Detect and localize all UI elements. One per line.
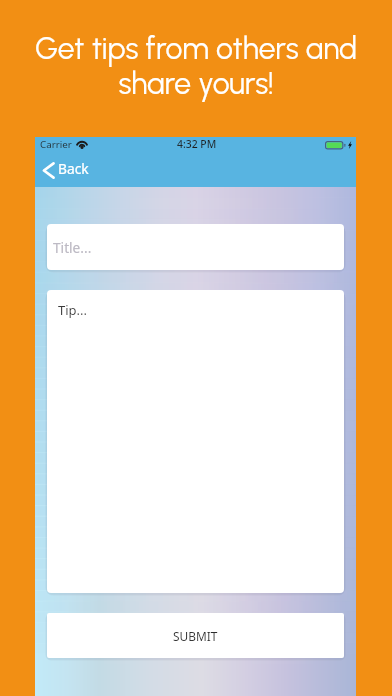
staticText: Title... (53, 238, 92, 257)
button[interactable]: Title... (47, 224, 344, 270)
staticText: Tip... (58, 301, 88, 319)
staticText: 4:32 PM (177, 137, 217, 151)
button[interactable]: SUBMIT (47, 613, 344, 658)
button[interactable]: Back (35, 159, 99, 184)
staticText: Carrier (40, 138, 72, 151)
staticText: SUBMIT (173, 628, 218, 644)
staticText: Back (58, 159, 89, 178)
button[interactable]: Tip... (47, 290, 344, 593)
staticText: Get tips from others and share yours! (0, 30, 392, 101)
